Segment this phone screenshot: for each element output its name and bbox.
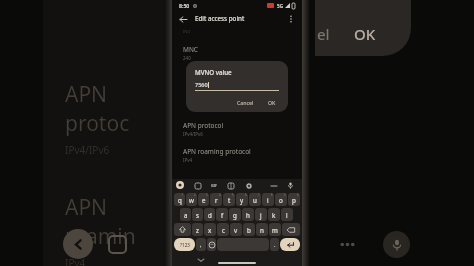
button[interactable]: r bbox=[210, 193, 222, 206]
button[interactable]: More bbox=[270, 182, 277, 189]
button[interactable]: p bbox=[288, 193, 300, 206]
staticText: z bbox=[196, 226, 199, 234]
button[interactable]: . bbox=[270, 238, 279, 251]
button[interactable]: Settings bbox=[244, 181, 253, 190]
staticText: d bbox=[208, 211, 212, 219]
staticText: y bbox=[240, 196, 244, 204]
staticText: e bbox=[202, 196, 206, 204]
staticText: q bbox=[178, 196, 182, 204]
staticText: t bbox=[228, 196, 231, 204]
staticText: ?123 bbox=[180, 242, 190, 248]
button[interactable]: Clipboard bbox=[193, 181, 202, 190]
staticText: el bbox=[317, 24, 330, 44]
button[interactable]: f bbox=[216, 208, 228, 221]
staticText: f bbox=[221, 211, 224, 219]
button[interactable]: Cancel bbox=[234, 97, 257, 108]
staticText: 5 bbox=[232, 193, 234, 197]
staticText: 9 bbox=[284, 193, 286, 197]
button[interactable]: z bbox=[192, 223, 203, 236]
staticText: APN protocol bbox=[183, 121, 224, 130]
button[interactable]: q bbox=[174, 193, 185, 206]
staticText: 7560 bbox=[195, 81, 208, 88]
button[interactable]: x bbox=[204, 223, 216, 236]
button[interactable]: s bbox=[192, 208, 203, 221]
button[interactable]: MNC bbox=[172, 45, 302, 61]
staticText: 240 bbox=[183, 55, 191, 61]
staticText: 5G bbox=[277, 3, 283, 9]
staticText: m bbox=[272, 226, 278, 234]
staticText: s bbox=[196, 211, 199, 219]
button[interactable]: Voice input bbox=[286, 181, 295, 190]
button[interactable]: GIF bbox=[211, 183, 217, 188]
staticText: IPv4 bbox=[183, 157, 193, 163]
staticText: r bbox=[215, 196, 218, 204]
staticText: u bbox=[253, 196, 257, 204]
button[interactable]: n bbox=[256, 223, 268, 236]
button[interactable]: o bbox=[275, 193, 287, 206]
button[interactable]: i bbox=[262, 193, 274, 206]
staticText: c bbox=[222, 226, 225, 234]
staticText: APN roaming protocol bbox=[183, 147, 251, 156]
button[interactable]: y bbox=[236, 193, 248, 206]
button[interactable]: g bbox=[229, 208, 241, 221]
button[interactable]: , bbox=[196, 238, 206, 251]
staticText: Cancel bbox=[237, 99, 254, 106]
staticText: 3 bbox=[206, 193, 208, 197]
staticText: l bbox=[286, 211, 288, 219]
button[interactable]: Assistant bbox=[176, 181, 184, 189]
button[interactable]: OK bbox=[265, 97, 279, 108]
staticText: g bbox=[233, 211, 237, 219]
staticText: MNC bbox=[183, 45, 198, 54]
button[interactable]: ?123 bbox=[174, 238, 195, 251]
staticText: APN protoc bbox=[65, 80, 172, 138]
button[interactable]: More options bbox=[285, 13, 297, 25]
button[interactable]: u bbox=[249, 193, 261, 206]
staticText: a bbox=[184, 211, 188, 219]
staticText: b bbox=[247, 226, 251, 234]
button[interactable]: j bbox=[255, 208, 267, 221]
button[interactable]: Shift bbox=[174, 223, 191, 236]
button[interactable]: h bbox=[242, 208, 254, 221]
button[interactable]: Backspace bbox=[282, 223, 300, 236]
button[interactable]: a bbox=[180, 208, 191, 221]
button[interactable]: b bbox=[243, 223, 255, 236]
button[interactable]: e bbox=[198, 193, 209, 206]
button[interactable]: w bbox=[186, 193, 197, 206]
staticText: 1 bbox=[182, 193, 184, 197]
button[interactable]: Enter bbox=[280, 238, 300, 251]
button[interactable]: Space bbox=[217, 238, 269, 251]
staticText: IPv4/IPv6 bbox=[65, 143, 110, 157]
staticText: IPv4 bbox=[65, 256, 86, 266]
button[interactable]: APN protocol bbox=[172, 121, 302, 137]
staticText: APN roamin bbox=[65, 193, 172, 251]
staticText: j bbox=[260, 211, 262, 219]
button[interactable]: Emoji bbox=[207, 238, 216, 251]
button[interactable]: v bbox=[230, 223, 242, 236]
staticText: 2 bbox=[194, 193, 196, 197]
staticText: n bbox=[260, 226, 264, 234]
button[interactable]: Back bbox=[177, 13, 189, 25]
button[interactable]: d bbox=[204, 208, 215, 221]
button[interactable]: c bbox=[217, 223, 229, 236]
staticText: 8:50 bbox=[179, 2, 190, 9]
button[interactable]: APN roaming protocol bbox=[172, 147, 302, 163]
staticText: 7 bbox=[258, 193, 260, 197]
staticText: , bbox=[200, 241, 202, 248]
staticText: x bbox=[208, 226, 212, 234]
button[interactable]: l bbox=[281, 208, 293, 221]
staticText: o bbox=[279, 196, 283, 204]
staticText: Edit access point bbox=[195, 14, 245, 23]
staticText: k bbox=[272, 211, 276, 219]
staticText: 0 bbox=[297, 193, 299, 197]
staticText: 4 bbox=[219, 193, 221, 197]
staticText: h bbox=[246, 211, 250, 219]
staticText: . bbox=[274, 241, 276, 248]
button[interactable]: k bbox=[268, 208, 280, 221]
staticText: 8 bbox=[271, 193, 273, 197]
button[interactable]: Translate bbox=[226, 181, 235, 190]
staticText: IND bbox=[183, 29, 191, 34]
button[interactable]: t bbox=[223, 193, 235, 206]
button[interactable]: m bbox=[269, 223, 281, 236]
staticText: IPv4/IPv6 bbox=[183, 131, 203, 137]
staticText: w bbox=[189, 196, 194, 204]
